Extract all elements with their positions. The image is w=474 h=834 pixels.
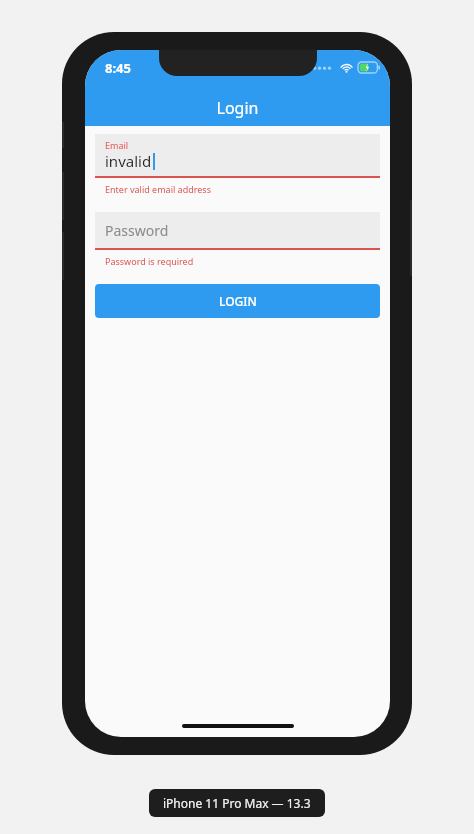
staticText: Login <box>85 97 390 119</box>
staticText: invalid <box>105 151 152 171</box>
staticText: Password is required <box>105 255 194 267</box>
other: Wi-Fi <box>340 61 353 74</box>
staticText: Password <box>105 221 169 240</box>
staticText: iPhone 11 Pro Max — 13.3 <box>163 795 311 811</box>
staticText: Enter valid email address <box>105 183 211 195</box>
button[interactable]: Password <box>95 212 380 248</box>
button[interactable]: Email <box>95 134 380 176</box>
staticText: LOGIN <box>219 293 257 309</box>
staticText: 8:45 <box>105 59 131 77</box>
other: Battery charging <box>358 62 380 73</box>
button[interactable]: LOGIN <box>95 284 380 318</box>
staticText: Email <box>105 139 129 151</box>
